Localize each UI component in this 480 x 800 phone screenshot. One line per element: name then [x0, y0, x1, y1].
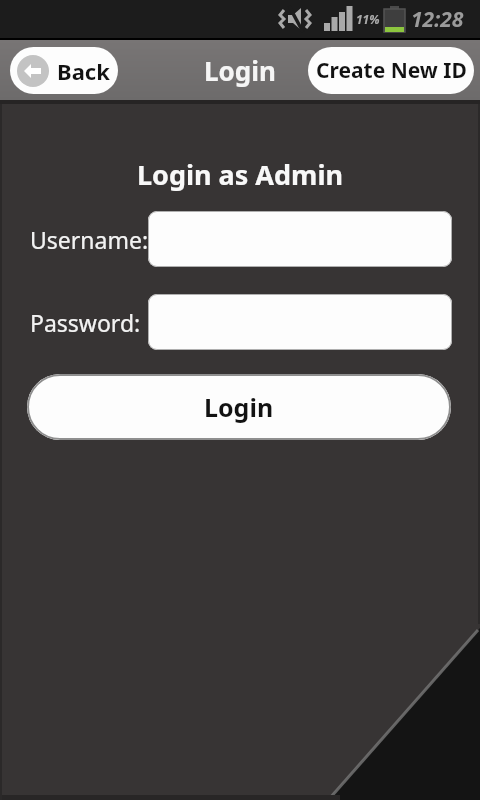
staticText: Create New ID: [316, 56, 467, 85]
button[interactable]: Create New ID: [308, 47, 474, 94]
button[interactable]: [148, 211, 452, 267]
staticText: Back: [57, 56, 110, 86]
staticText: Login: [204, 53, 276, 88]
staticText: Password:: [30, 307, 141, 338]
staticText: 12:28: [411, 5, 464, 34]
staticText: Login as Admin: [0, 156, 480, 193]
staticText: 11%: [356, 11, 380, 27]
button[interactable]: Login: [27, 374, 451, 440]
button[interactable]: [148, 294, 452, 350]
button[interactable]: Back: [10, 47, 118, 94]
staticText: Username:: [30, 224, 148, 255]
staticText: Login: [204, 390, 274, 424]
